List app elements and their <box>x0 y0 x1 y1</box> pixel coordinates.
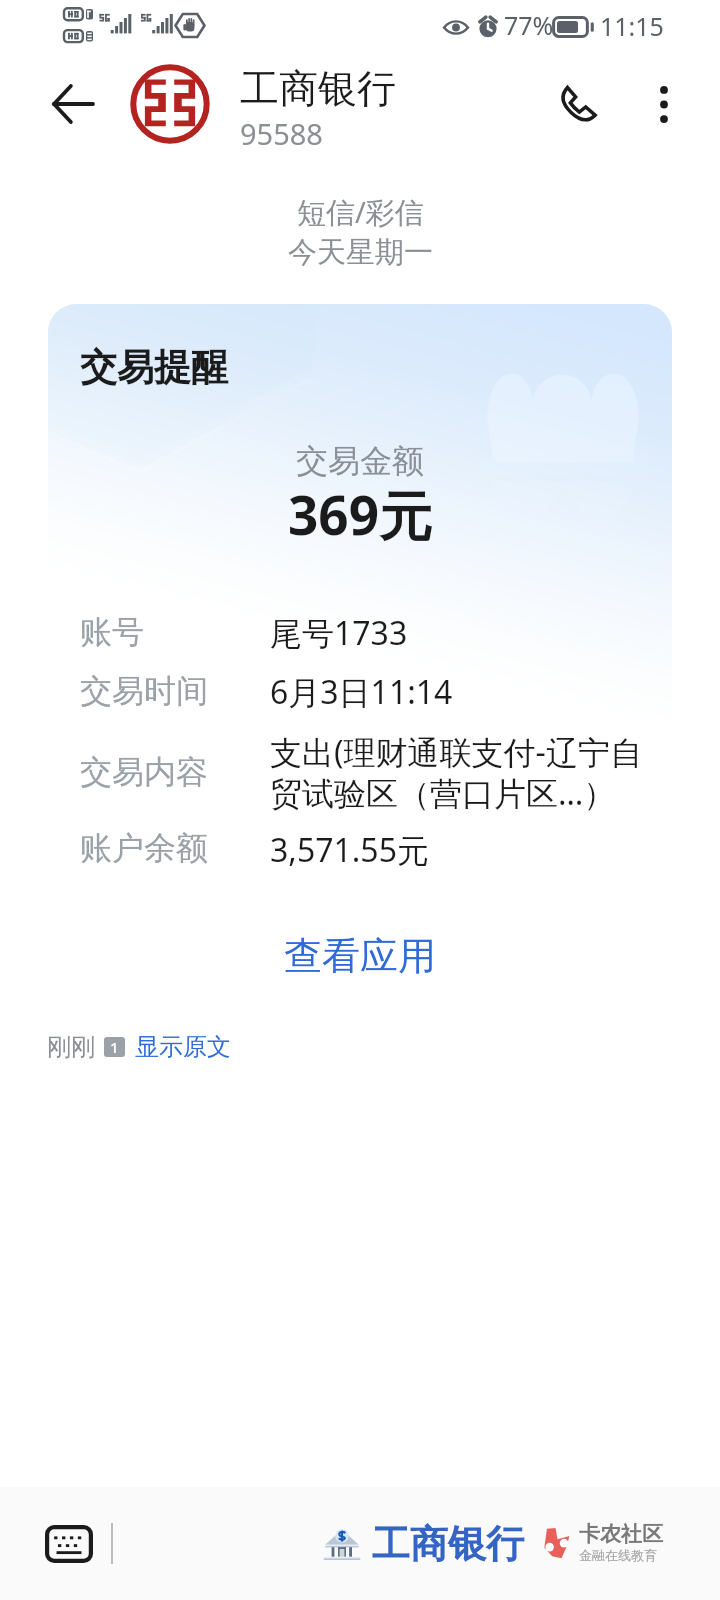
button[interactable]: More options <box>628 68 700 140</box>
button[interactable]: Back <box>28 60 116 148</box>
staticText: 11:15 <box>600 9 664 43</box>
staticText: 短信/彩信 <box>297 192 424 232</box>
staticText: 交易提醒 <box>80 344 228 391</box>
button[interactable]: Call <box>537 64 617 144</box>
staticText: 369元 <box>288 478 432 550</box>
staticText: 账号 <box>80 612 144 652</box>
button[interactable]: Keyboard <box>38 1513 100 1575</box>
staticText: 显示原文 <box>135 1032 231 1062</box>
staticText: 支出(理财通联支付-辽宁自 贸试验区（营口片区…） <box>270 730 642 815</box>
staticText: 交易金额 <box>296 441 424 481</box>
staticText: 工商银行 <box>372 1520 524 1568</box>
button[interactable]: 查看应用 <box>48 924 672 988</box>
staticText: 77% <box>504 8 554 42</box>
staticText: 账户余额 <box>80 828 208 868</box>
staticText: 尾号1733 <box>270 611 408 655</box>
staticText: 6月3日11:14 <box>270 670 453 714</box>
staticText: 卡农社区 <box>579 1521 663 1547</box>
button[interactable]: 显示原文 <box>135 1032 231 1062</box>
staticText: 1 <box>110 1037 119 1057</box>
staticText: 交易时间 <box>80 671 208 711</box>
staticText: 刚刚 <box>47 1032 95 1062</box>
staticText: 查看应用 <box>284 932 436 980</box>
staticText: 95588 <box>240 114 323 153</box>
staticText: 今天星期一 <box>288 234 433 271</box>
staticText: 金融在线教育 <box>579 1547 657 1563</box>
staticText: 工商银行 <box>240 64 396 113</box>
button[interactable]: 交易提醒 <box>48 304 672 1022</box>
staticText: 3,571.55元 <box>270 828 429 872</box>
staticText: 交易内容 <box>80 752 208 792</box>
